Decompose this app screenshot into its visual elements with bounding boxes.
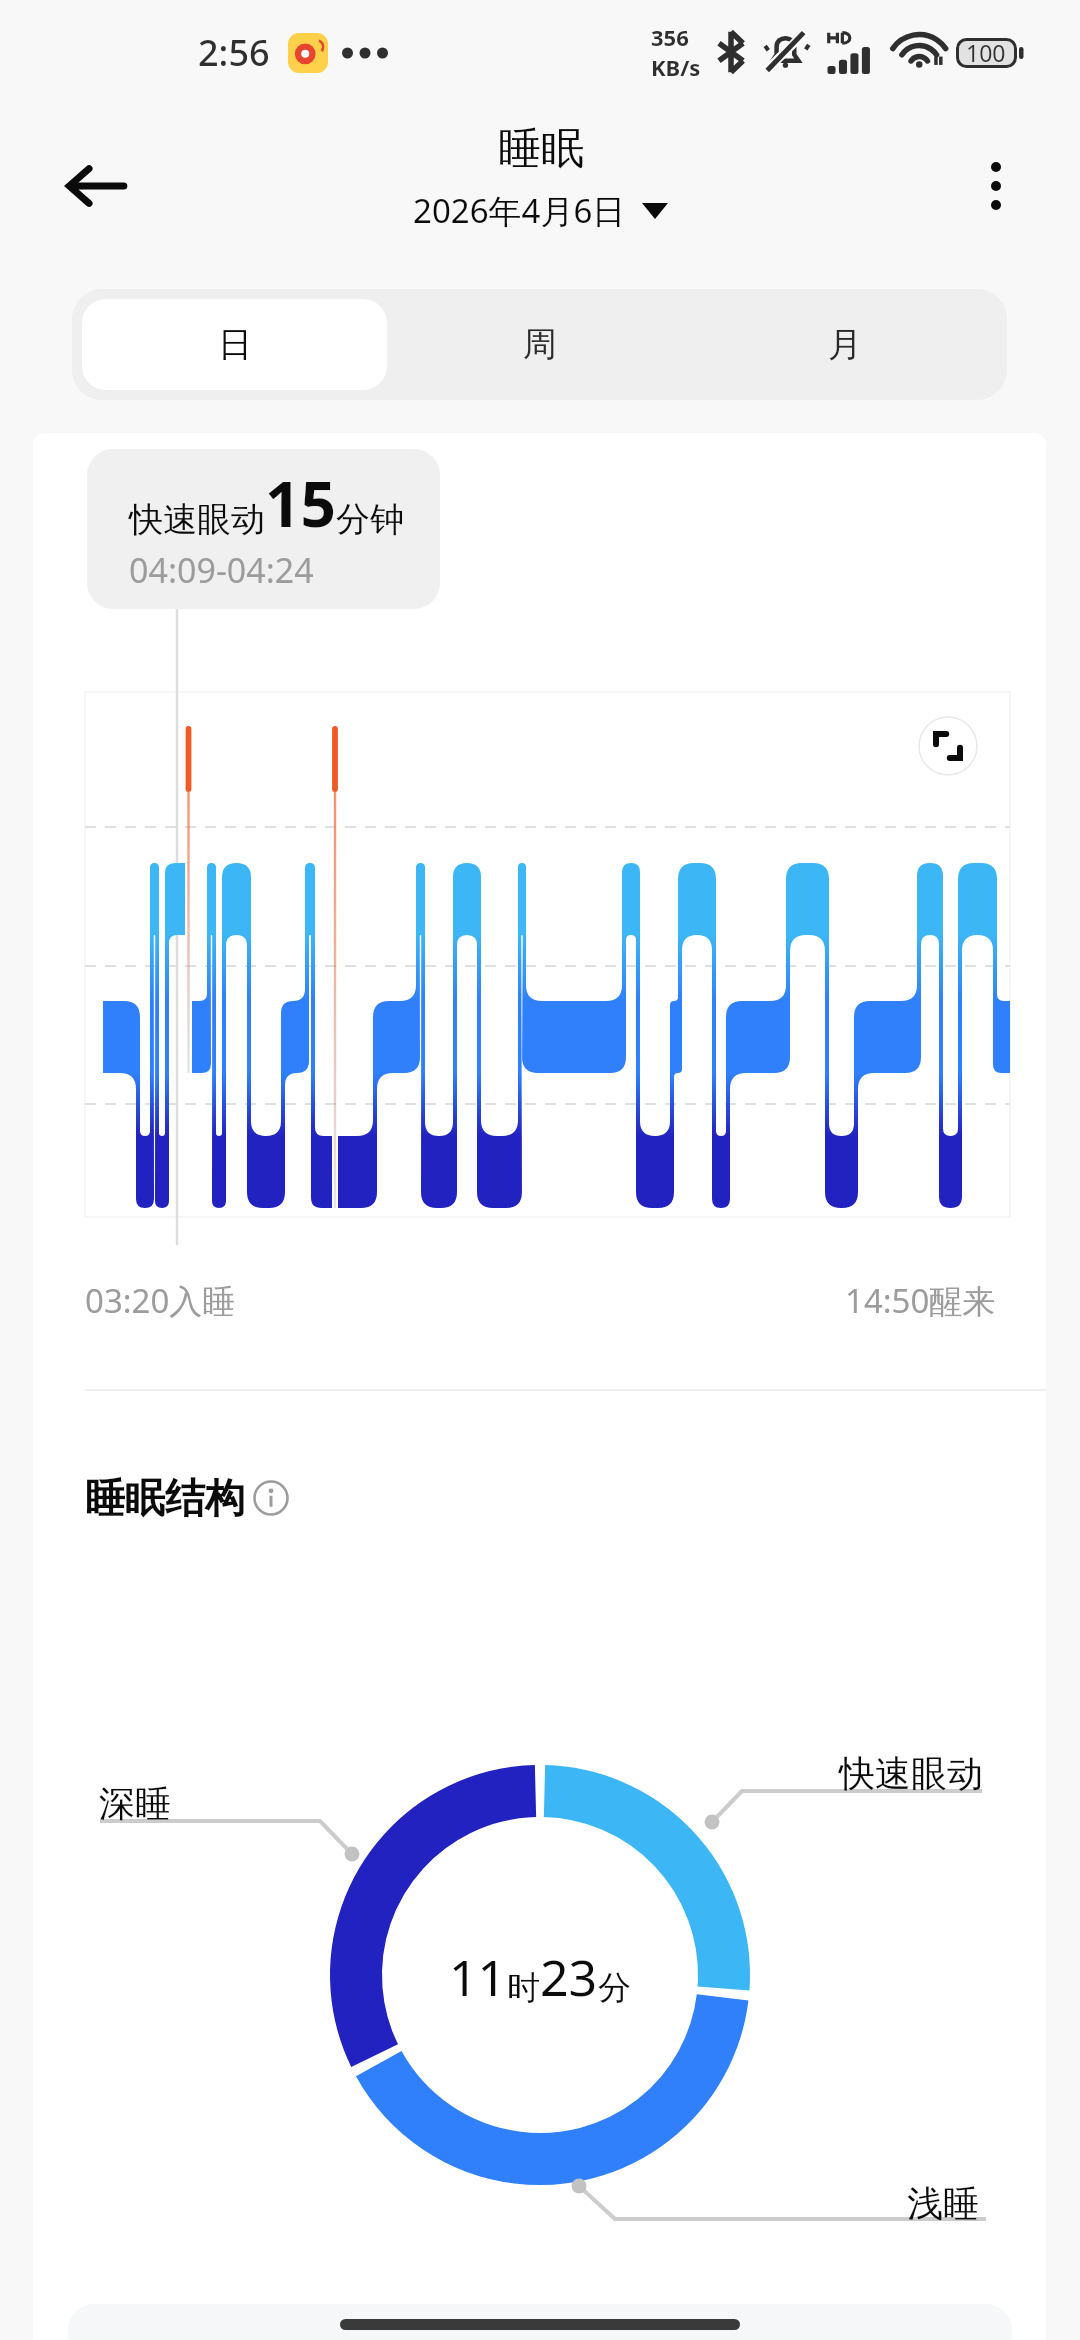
staticText: 时 [507,1967,540,2009]
staticText: 睡眠结构 [85,1473,245,1523]
staticText: 月 [828,323,862,366]
button[interactable]: 睡眠结构 [85,1473,289,1523]
staticText: 2026年4月6日 [413,188,626,233]
staticText: 2:56 [198,28,270,77]
staticText: 14:50醒来 [845,1278,996,1323]
staticText: 深睡 [99,1781,171,1826]
staticText: 快速眼动 [839,1751,983,1796]
staticText: 23 [540,1943,598,2011]
staticText: 分钟 [336,498,404,541]
staticText: 周 [523,323,557,366]
staticText: 快速眼动 [129,498,265,541]
button[interactable]: 日 [82,299,387,390]
staticText: 11 [449,1943,507,2011]
button[interactable]: Back [50,140,142,232]
staticText: 03:20入睡 [85,1278,236,1323]
staticText: 浅睡 [907,2181,979,2226]
staticText: KB/s [651,52,701,82]
staticText: 日 [218,323,252,366]
staticText: 04:09-04:24 [129,547,314,593]
button[interactable]: 周 [387,299,692,390]
button[interactable]: 2026年4月6日 [409,186,672,235]
staticText: 100 [966,37,1006,68]
staticText: 356 [651,22,689,52]
staticText: 15 [265,461,336,545]
button[interactable]: Expand chart [918,716,978,776]
staticText: 睡眠 [498,122,584,176]
staticText: 分 [598,1967,631,2009]
button[interactable]: 月 [692,299,997,390]
button[interactable]: More options [956,146,1036,226]
